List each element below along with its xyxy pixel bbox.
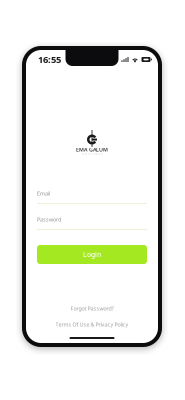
staticText: Login <box>83 250 101 259</box>
button[interactable]: Login <box>26 245 158 264</box>
staticText: Forgot Password? <box>70 305 113 312</box>
staticText: Terms Of Use & Privacy Policy <box>55 321 128 328</box>
staticText: Email <box>37 190 50 197</box>
staticText: 16:55 <box>38 53 61 66</box>
staticText: Password <box>37 216 61 223</box>
button[interactable]: Terms Of Use & Privacy Policy <box>55 319 128 330</box>
button[interactable]: Forgot Password? <box>70 303 113 314</box>
staticText: EMA GALUM <box>76 146 108 153</box>
staticText: B O U T I Q U E <box>82 152 102 155</box>
